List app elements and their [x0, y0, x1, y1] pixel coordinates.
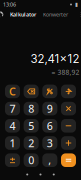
button[interactable]: 3: [42, 136, 57, 150]
button[interactable]: 4: [5, 119, 20, 133]
button[interactable]: Percent: [42, 85, 57, 98]
staticText: 1: [9, 136, 15, 150]
button[interactable]: 1: [5, 136, 20, 150]
staticText: = 388,92: [51, 68, 79, 77]
staticText: 2: [28, 136, 34, 150]
button[interactable]: Divide: [61, 85, 76, 98]
staticText: 3: [47, 136, 53, 150]
button[interactable]: Equals: [61, 153, 76, 167]
button[interactable]: Plus: [61, 136, 76, 150]
button[interactable]: Minus: [61, 119, 76, 133]
button[interactable]: C: [5, 85, 20, 98]
button[interactable]: Multiply: [61, 102, 76, 115]
staticText: 8: [28, 101, 34, 116]
button[interactable]: 2: [24, 136, 39, 150]
button[interactable]: 9: [42, 102, 57, 115]
staticText: 6: [47, 119, 53, 133]
button[interactable]: 8: [24, 102, 39, 115]
button[interactable]: Backspace: [24, 85, 39, 98]
button[interactable]: Kalkulator: [9, 11, 37, 18]
staticText: C: [9, 84, 16, 98]
button[interactable]: History: [0, 9, 6, 20]
staticText: ,: [48, 153, 51, 167]
button[interactable]: 7: [5, 102, 20, 115]
staticText: 13:06: [3, 1, 16, 8]
button[interactable]: More options: [77, 9, 81, 20]
staticText: 4: [9, 119, 15, 133]
staticText: Konwerter: [43, 11, 68, 18]
button[interactable]: Konwerter: [42, 11, 69, 18]
staticText: 0: [28, 153, 34, 167]
staticText: 5: [28, 119, 34, 133]
button[interactable]: ,: [42, 153, 57, 167]
button[interactable]: 0: [24, 153, 39, 167]
staticText: ▮: [75, 1, 78, 8]
button[interactable]: Toggle sign: [5, 153, 20, 167]
button[interactable]: 5: [24, 119, 39, 133]
staticText: 32,41×12: [30, 52, 79, 66]
staticText: 9: [47, 101, 53, 116]
staticText: 7: [9, 101, 15, 116]
button[interactable]: 6: [42, 119, 57, 133]
staticText: Kalkulator: [10, 11, 36, 18]
